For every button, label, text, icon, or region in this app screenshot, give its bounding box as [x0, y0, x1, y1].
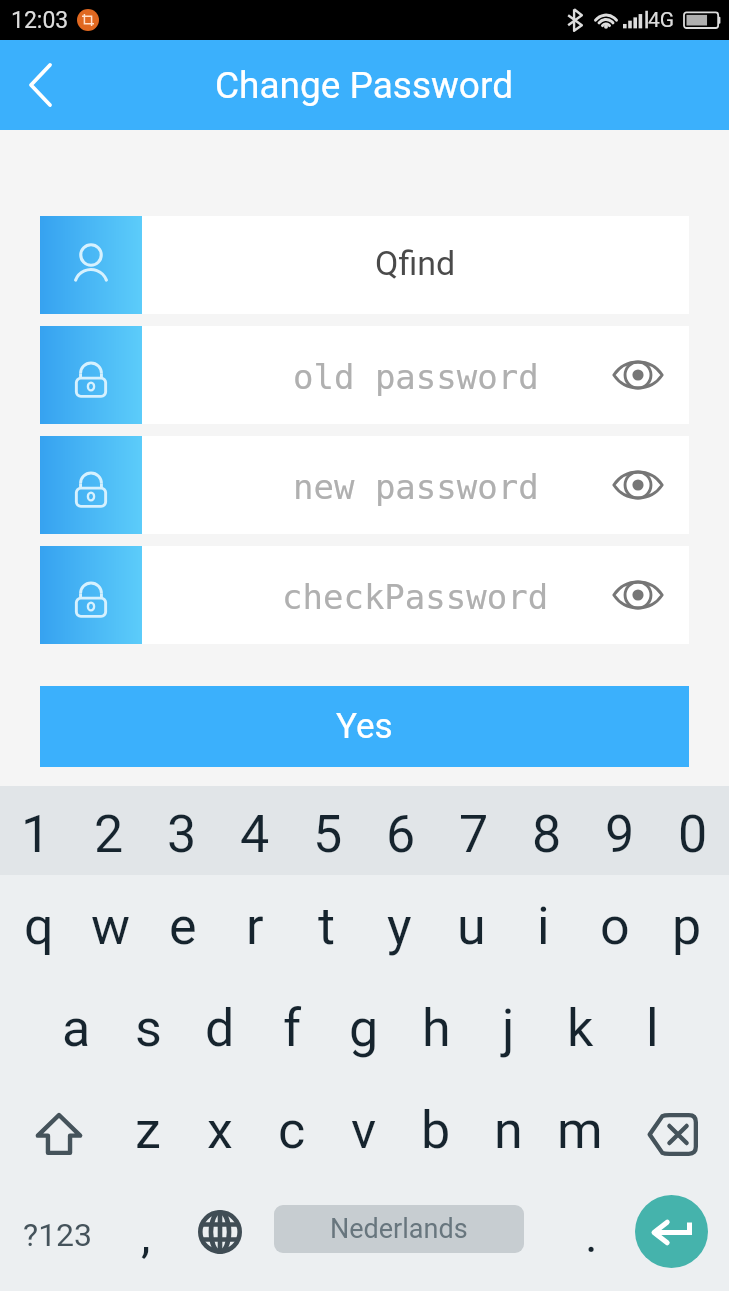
- button[interactable]: x: [184, 1079, 256, 1181]
- button[interactable]: 8: [510, 794, 583, 875]
- button[interactable]: 5: [291, 794, 364, 875]
- button[interactable]: z: [112, 1079, 184, 1181]
- button[interactable]: 6: [364, 794, 437, 875]
- staticText: m: [557, 1100, 603, 1161]
- staticText: a: [62, 998, 91, 1059]
- staticText: Nederlands: [330, 1213, 468, 1245]
- button[interactable]: v: [328, 1079, 400, 1181]
- staticText: Yes: [336, 706, 393, 747]
- button[interactable]: k: [544, 977, 616, 1079]
- staticText: f: [283, 998, 302, 1059]
- staticText: 1: [21, 804, 51, 865]
- button[interactable]: o: [579, 875, 651, 977]
- staticText: r: [246, 896, 264, 957]
- button[interactable]: Show password: [605, 342, 671, 408]
- button[interactable]: a: [40, 977, 112, 1079]
- button[interactable]: Backspace: [616, 1079, 729, 1181]
- staticText: v: [351, 1100, 377, 1161]
- staticText: x: [207, 1100, 233, 1161]
- staticText: e: [169, 896, 197, 957]
- button[interactable]: Enter: [647, 1181, 729, 1288]
- staticText: new password: [293, 467, 539, 507]
- button[interactable]: old password: [40, 326, 689, 424]
- staticText: checkPassword: [282, 577, 549, 617]
- staticText: 9: [605, 804, 635, 865]
- staticText: c: [278, 1100, 306, 1161]
- staticText: t: [318, 896, 336, 957]
- button[interactable]: c: [256, 1079, 328, 1181]
- button[interactable]: b: [400, 1079, 472, 1181]
- button[interactable]: .: [535, 1181, 647, 1288]
- button[interactable]: 7: [437, 794, 510, 875]
- button[interactable]: i: [507, 875, 579, 977]
- button[interactable]: Show password: [605, 452, 671, 518]
- button[interactable]: l: [616, 977, 688, 1079]
- staticText: 4: [240, 804, 270, 865]
- staticText: .: [585, 1207, 598, 1263]
- staticText: j: [502, 998, 515, 1059]
- staticText: u: [457, 896, 486, 957]
- button[interactable]: 0: [656, 794, 729, 875]
- staticText: 8: [532, 804, 562, 865]
- button[interactable]: p: [651, 875, 723, 977]
- staticText: 12:03: [11, 7, 69, 34]
- button[interactable]: Change language: [176, 1181, 263, 1288]
- staticText: d: [205, 998, 235, 1059]
- staticText: h: [422, 998, 451, 1059]
- button[interactable]: r: [219, 875, 291, 977]
- staticText: 3: [167, 804, 197, 865]
- button[interactable]: ,: [116, 1181, 176, 1288]
- button[interactable]: 9: [583, 794, 656, 875]
- staticText: b: [421, 1100, 451, 1161]
- button[interactable]: m: [544, 1079, 616, 1181]
- staticText: p: [672, 896, 702, 957]
- staticText: 6: [386, 804, 416, 865]
- staticText: l: [646, 998, 659, 1059]
- button[interactable]: Back: [0, 40, 81, 130]
- button[interactable]: w: [75, 875, 147, 977]
- button[interactable]: q: [3, 875, 75, 977]
- button[interactable]: e: [147, 875, 219, 977]
- staticText: 2: [94, 804, 124, 865]
- staticText: 4G: [648, 8, 675, 33]
- button[interactable]: 4: [218, 794, 291, 875]
- button[interactable]: f: [256, 977, 328, 1079]
- button[interactable]: y: [363, 875, 435, 977]
- button[interactable]: 2: [72, 794, 145, 875]
- staticText: old password: [293, 357, 539, 397]
- button[interactable]: 1: [0, 794, 72, 875]
- staticText: Change Password: [215, 64, 514, 107]
- button[interactable]: Nederlands: [274, 1205, 524, 1253]
- staticText: i: [537, 896, 550, 957]
- staticText: o: [600, 896, 630, 957]
- button[interactable]: j: [472, 977, 544, 1079]
- staticText: q: [24, 896, 54, 957]
- staticText: k: [567, 998, 594, 1059]
- staticText: ,: [141, 1207, 151, 1263]
- staticText: n: [494, 1100, 523, 1161]
- button[interactable]: Show password: [605, 562, 671, 628]
- button[interactable]: Yes: [40, 686, 689, 767]
- button[interactable]: t: [291, 875, 363, 977]
- button[interactable]: new password: [40, 436, 689, 534]
- staticText: 5: [313, 804, 343, 865]
- button[interactable]: 3: [145, 794, 218, 875]
- button[interactable]: g: [328, 977, 400, 1079]
- button[interactable]: checkPassword: [40, 546, 689, 644]
- button[interactable]: Qfind: [40, 216, 689, 314]
- staticText: 7: [459, 804, 489, 865]
- button[interactable]: n: [472, 1079, 544, 1181]
- staticText: 0: [678, 804, 708, 865]
- button[interactable]: h: [400, 977, 472, 1079]
- staticText: y: [387, 896, 412, 957]
- staticText: w: [91, 896, 131, 957]
- button[interactable]: d: [184, 977, 256, 1079]
- staticText: g: [349, 998, 379, 1059]
- button[interactable]: s: [112, 977, 184, 1079]
- staticText: ?123: [23, 1216, 93, 1254]
- button[interactable]: u: [435, 875, 507, 977]
- staticText: Qfind: [375, 243, 456, 283]
- button[interactable]: Shift: [0, 1079, 112, 1181]
- staticText: s: [135, 998, 162, 1059]
- button[interactable]: ?123: [0, 1181, 116, 1288]
